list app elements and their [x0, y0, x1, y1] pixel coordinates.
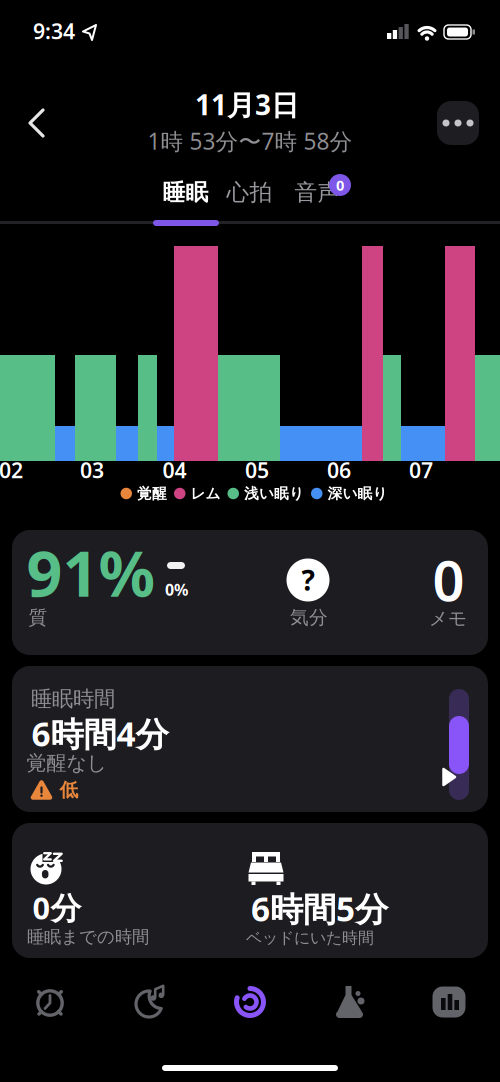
button[interactable]: ラボ — [318, 977, 382, 1027]
staticText: 睡眠時間 — [31, 686, 115, 712]
button[interactable]: 音声 — [287, 172, 347, 212]
staticText: 03 — [80, 456, 104, 484]
staticText: 05 — [245, 456, 269, 484]
staticText: 91% — [26, 531, 155, 614]
button[interactable]: 睡眠 — [155, 172, 215, 212]
staticText: 覚醒なし — [26, 751, 106, 775]
staticText: 睡眠 — [162, 179, 208, 206]
button[interactable]: More — [437, 101, 479, 145]
button[interactable]: 就寝 — [119, 977, 183, 1027]
staticText: 浅い眠り — [244, 484, 304, 502]
staticText: 深い眠り — [327, 484, 387, 502]
button[interactable]: 心拍 — [219, 172, 279, 212]
staticText: 0% — [165, 579, 188, 600]
staticText: 質 — [28, 606, 47, 629]
staticText: 07 — [409, 456, 433, 484]
staticText: 02 — [0, 456, 23, 484]
staticText: 0 — [336, 175, 344, 195]
staticText: ? — [301, 561, 314, 599]
staticText: 6時間4分 — [31, 711, 168, 756]
staticText: 睡眠までの時間 — [27, 926, 149, 948]
button[interactable]: 気分 — [286, 558, 329, 601]
staticText: 気分 — [290, 606, 328, 629]
staticText: 1時 53分〜7時 58分 — [147, 126, 352, 156]
staticText: メモ — [429, 607, 467, 630]
staticText: 6時間5分 — [251, 886, 388, 931]
staticText: 0分 — [32, 887, 81, 928]
staticText: 低 — [59, 778, 78, 801]
staticText: 覚醒 — [137, 484, 167, 502]
staticText: 心拍 — [226, 179, 272, 206]
staticText: 9:34 — [33, 17, 75, 45]
button[interactable]: Back — [17, 105, 61, 141]
staticText: 0 — [432, 542, 464, 617]
staticText: レム — [190, 484, 220, 502]
button[interactable]: アラーム — [18, 977, 82, 1027]
staticText: 06 — [327, 456, 351, 484]
staticText: 04 — [162, 456, 186, 484]
button[interactable]: 統計 — [417, 977, 481, 1027]
staticText: ベッドにいた時間 — [246, 928, 374, 948]
staticText: 11月3日 — [195, 86, 299, 123]
staticText: 音声 — [294, 179, 340, 206]
button[interactable]: 睡眠 — [218, 977, 282, 1027]
